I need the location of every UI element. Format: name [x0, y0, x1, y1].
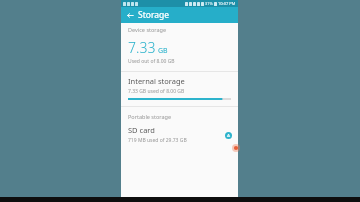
staticText: Internal storage: [128, 76, 185, 86]
button[interactable]: Internal storage: [121, 72, 238, 104]
staticText: Device storage: [128, 26, 167, 33]
staticText: 10:07 PM: [218, 1, 236, 6]
button[interactable]: SD card: [121, 121, 238, 148]
staticText: Portable storage: [128, 113, 172, 120]
staticText: 7.33: [128, 38, 156, 57]
staticText: 7.33 GB used of 8.00 GB: [128, 88, 185, 95]
staticText: Storage: [138, 9, 170, 21]
staticText: Used out of 8.00 GB: [128, 58, 175, 65]
button[interactable]: Eject SD card: [223, 130, 233, 140]
staticText: SD card: [128, 125, 155, 135]
staticText: 31%: [205, 1, 213, 6]
button[interactable]: Back: [124, 9, 136, 21]
staticText: 719 MB used of 29.73 GB: [128, 137, 187, 144]
staticText: GB: [158, 46, 168, 56]
